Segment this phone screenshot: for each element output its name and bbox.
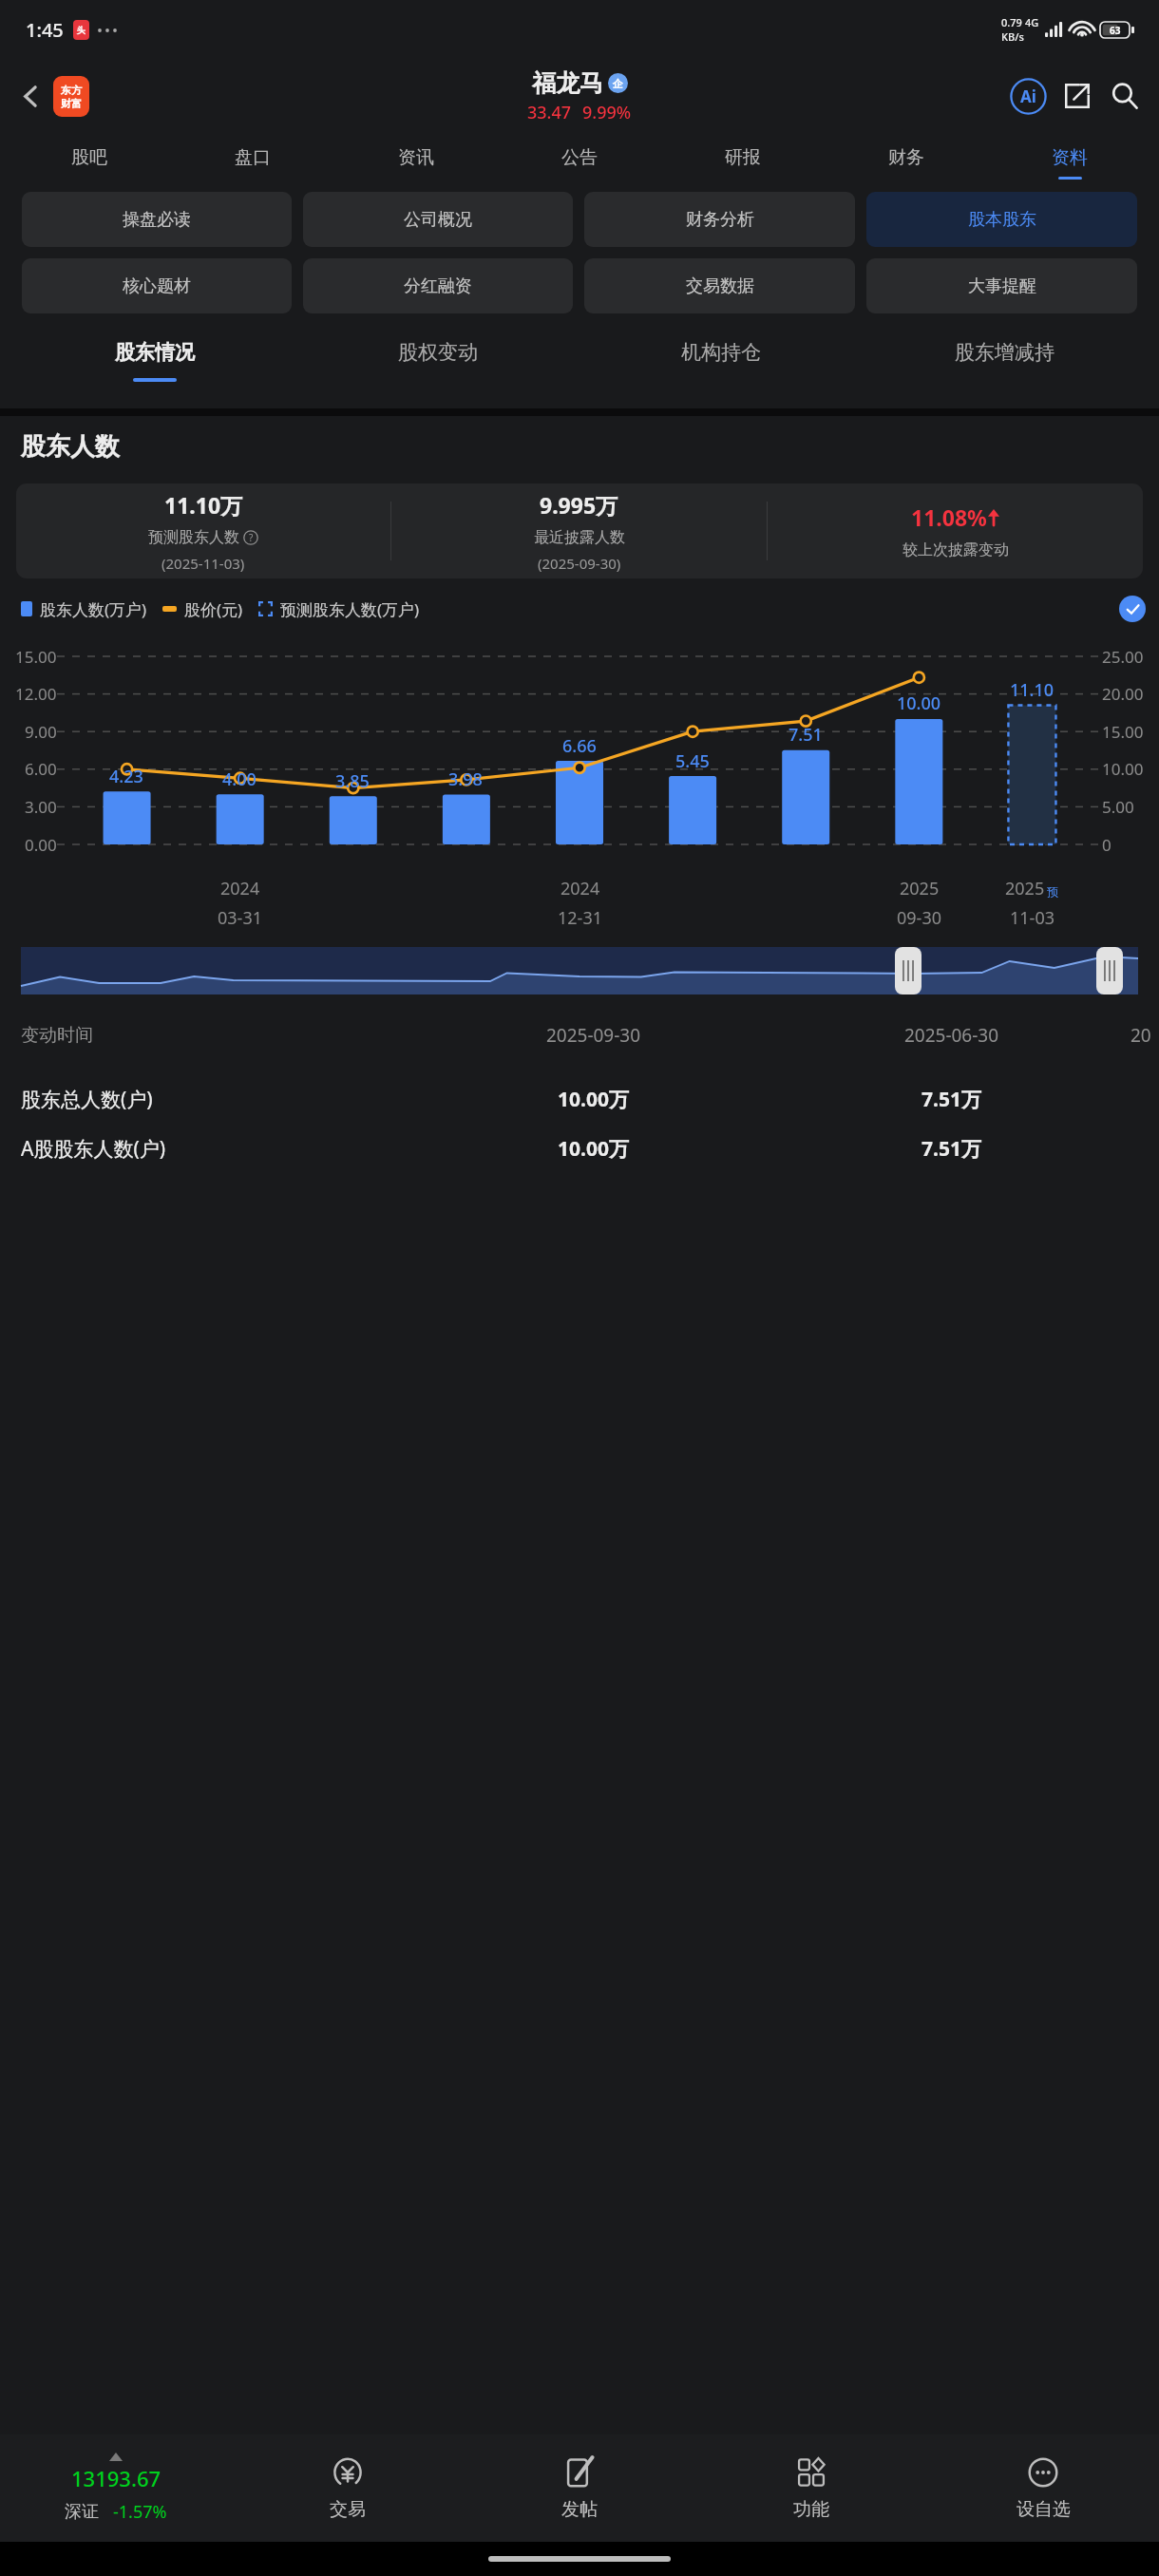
button[interactable]: 交易数据 [584,258,855,313]
staticText: 预测股东人数(万户) [280,598,420,620]
button[interactable]: 分红融资 [303,258,573,313]
button[interactable]: AI assistant [1005,73,1051,119]
button[interactable]: 操盘必读 [22,192,292,247]
staticText: 9.995万 [540,490,618,520]
staticText: 12.00 [15,683,57,705]
staticText: 资讯 [398,146,434,169]
staticText: 20.00 [1102,683,1144,705]
staticText: 操盘必读 [123,209,191,231]
staticText: 15.00 [1102,721,1144,743]
staticText: 2024 [560,877,600,900]
staticText: 公司概况 [404,209,472,231]
button[interactable]: Range end [1096,947,1123,994]
staticText: 2025 [1005,877,1045,900]
staticText: 10.00万 [414,1135,772,1163]
staticText: 交易数据 [686,275,754,297]
button[interactable]: 股东情况 [13,313,296,408]
staticText: 股价(元) [184,598,243,620]
button[interactable]: 13193.67 [0,2434,232,2542]
staticText: 10.00 [1102,758,1144,780]
button[interactable]: 大事提醒 [866,258,1137,313]
staticText: Ai [1020,85,1036,107]
button[interactable]: 财务 [825,133,988,192]
staticText: 3.00 [25,796,57,818]
staticText: 预测股东人数 [148,528,239,547]
staticText: 4.00 [222,767,256,791]
staticText: 63 [1110,24,1121,37]
button[interactable]: 财务分析 [584,192,855,247]
button[interactable]: 股吧 [8,133,171,192]
button[interactable]: 资讯 [334,133,498,192]
staticText: (2025-11-03) [161,554,245,573]
staticText: 11.10万 [164,490,243,520]
staticText: 股东增减持 [955,340,1054,365]
staticText: 股东情况 [115,340,195,365]
button[interactable]: 东方 [53,76,89,117]
staticText: 财务 [888,146,924,169]
staticText: 7.51万 [772,1135,1130,1163]
staticText: 5.45 [675,749,710,773]
staticText: 33.47 [527,101,572,124]
staticText: 10.00 [897,691,941,715]
button[interactable]: 交易 [232,2434,464,2542]
button[interactable]: Toggle forecast series [1119,596,1146,622]
button[interactable]: Range start [895,947,921,994]
button[interactable]: 机构持仓 [579,313,863,408]
button[interactable]: 股本股东 [866,192,1137,247]
staticText: 机构持仓 [681,340,761,365]
staticText: 12-31 [558,906,602,930]
staticText: 10.00万 [414,1086,772,1113]
button[interactable]: 盘口 [171,133,334,192]
button[interactable]: 公司概况 [303,192,573,247]
staticText: 设自选 [1016,2498,1071,2521]
staticText: 6.00 [25,758,57,780]
button[interactable]: Search [1102,73,1148,119]
button[interactable]: 资料 [988,133,1151,192]
button[interactable]: Share [1054,73,1100,119]
staticText: 发帖 [561,2498,598,2521]
staticText: 分红融资 [404,275,472,297]
staticText: 3.98 [448,767,483,791]
staticText: 股东人数(万户) [40,598,147,620]
staticText: 0.79 [1001,15,1022,29]
staticText: 财务分析 [686,209,754,231]
staticText: 研报 [725,146,761,169]
staticText: 深证 [65,2501,99,2523]
staticText: 功能 [793,2498,829,2521]
button[interactable]: 核心题材 [22,258,292,313]
staticText: 股东人数 [21,431,120,463]
button[interactable]: 设自选 [927,2434,1159,2542]
staticText: 福龙马 [532,68,603,98]
button[interactable]: 功能 [695,2434,927,2542]
button[interactable]: 发帖 [464,2434,695,2542]
button[interactable]: 股权变动 [296,313,579,408]
staticText: 2025 [900,877,940,900]
staticText: 9.99% [582,101,632,124]
staticText: 4G [1025,15,1039,29]
staticText: 4.23 [109,765,143,788]
staticText: 11.08% [911,502,987,532]
staticText: 11.10 [1010,678,1054,702]
staticText: 13193.67 [71,2464,161,2492]
staticText: 核心题材 [123,275,191,297]
staticText: 股东总人数(户) [21,1086,414,1113]
staticText: 头 [77,25,85,35]
staticText: 盘口 [235,146,271,169]
staticText: 15.00 [15,646,57,668]
staticText: 09-30 [897,906,941,930]
button[interactable]: 公告 [498,133,661,192]
staticText: 东方 [61,84,82,97]
staticText: A股股东人数(户) [21,1135,414,1163]
button[interactable]: Back [9,75,51,117]
staticText: 7.51万 [772,1086,1130,1113]
staticText: 3.85 [335,769,370,793]
staticText: 企 [613,77,623,90]
staticText: 0 [1102,834,1111,856]
button[interactable]: 研报 [661,133,825,192]
staticText: 1:45 [26,17,64,43]
staticText: 变动时间 [21,1024,414,1047]
button[interactable]: 股东增减持 [863,313,1146,408]
staticText: 交易 [330,2498,366,2521]
staticText: 6.66 [562,734,597,758]
staticText: 11-03 [1010,906,1054,930]
